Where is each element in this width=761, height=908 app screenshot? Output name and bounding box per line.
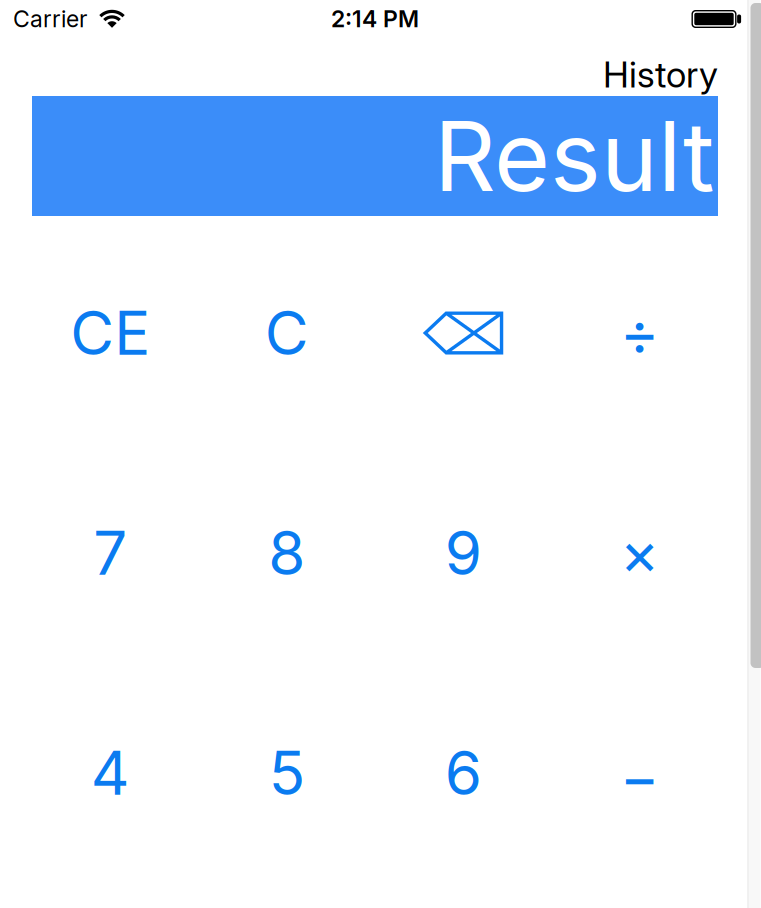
button[interactable]: History <box>603 53 718 96</box>
button[interactable]: 9 <box>375 443 551 663</box>
staticText: − <box>620 741 660 814</box>
button[interactable]: 5 <box>198 663 375 883</box>
button[interactable]: C <box>198 223 375 443</box>
staticText: C <box>265 297 309 369</box>
button[interactable]: 4 <box>22 663 198 883</box>
staticText: 8 <box>268 517 305 589</box>
staticText: 7 <box>93 517 127 589</box>
button[interactable]: Delete <box>375 223 551 443</box>
button[interactable]: CE <box>22 223 198 443</box>
button[interactable]: 8 <box>198 443 375 663</box>
staticText: 2:14 PM <box>331 5 419 33</box>
staticText: 4 <box>91 737 130 809</box>
staticText: Carrier <box>13 5 87 33</box>
staticText: History <box>603 53 718 96</box>
staticText: 6 <box>445 737 482 809</box>
staticText: 5 <box>269 737 305 809</box>
staticText: CE <box>70 297 150 369</box>
button[interactable]: ÷ <box>551 223 728 443</box>
staticText: ÷ <box>620 297 660 369</box>
staticText: × <box>620 517 660 589</box>
button[interactable]: × <box>551 443 728 663</box>
staticText: 9 <box>445 517 482 589</box>
button[interactable]: 6 <box>375 663 551 883</box>
button[interactable]: − <box>551 663 728 883</box>
button[interactable]: 7 <box>22 443 198 663</box>
staticText: Result <box>434 98 714 214</box>
